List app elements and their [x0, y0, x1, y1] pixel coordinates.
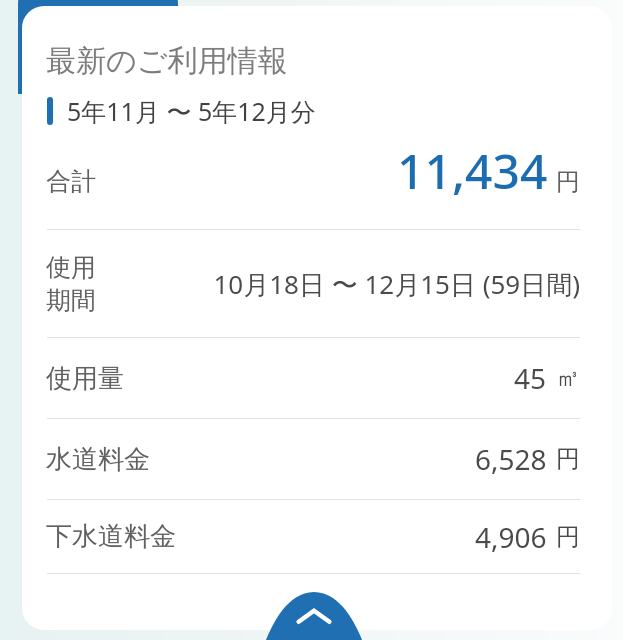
staticText: 期間 [46, 285, 96, 316]
staticText: 使用 [46, 252, 96, 283]
staticText: 11,434 [397, 138, 548, 203]
staticText: 5年11月 〜 5年12月分 [67, 94, 316, 128]
staticText: 合計 [46, 166, 96, 197]
staticText: 水道料金 [46, 443, 150, 476]
staticText: 6,528 [475, 440, 547, 478]
button[interactable]: 水道料金 [22, 419, 612, 499]
staticText: 円 [556, 522, 580, 552]
button[interactable]: 使用量 [22, 338, 612, 418]
button[interactable]: 下水道料金 [22, 500, 612, 573]
staticText: 円 [556, 444, 580, 474]
staticText: 45 [514, 359, 547, 397]
staticText: 10月18日 〜 12月15日 (59日間) [213, 266, 580, 302]
staticText: 下水道料金 [46, 520, 176, 553]
button[interactable]: Scroll up [266, 592, 362, 640]
staticText: 4,906 [475, 518, 547, 556]
staticText: 円 [556, 167, 580, 197]
staticText: ㎥ [556, 363, 580, 393]
staticText: 最新のご利用情報 [46, 42, 288, 80]
staticText: 使用量 [46, 362, 124, 395]
